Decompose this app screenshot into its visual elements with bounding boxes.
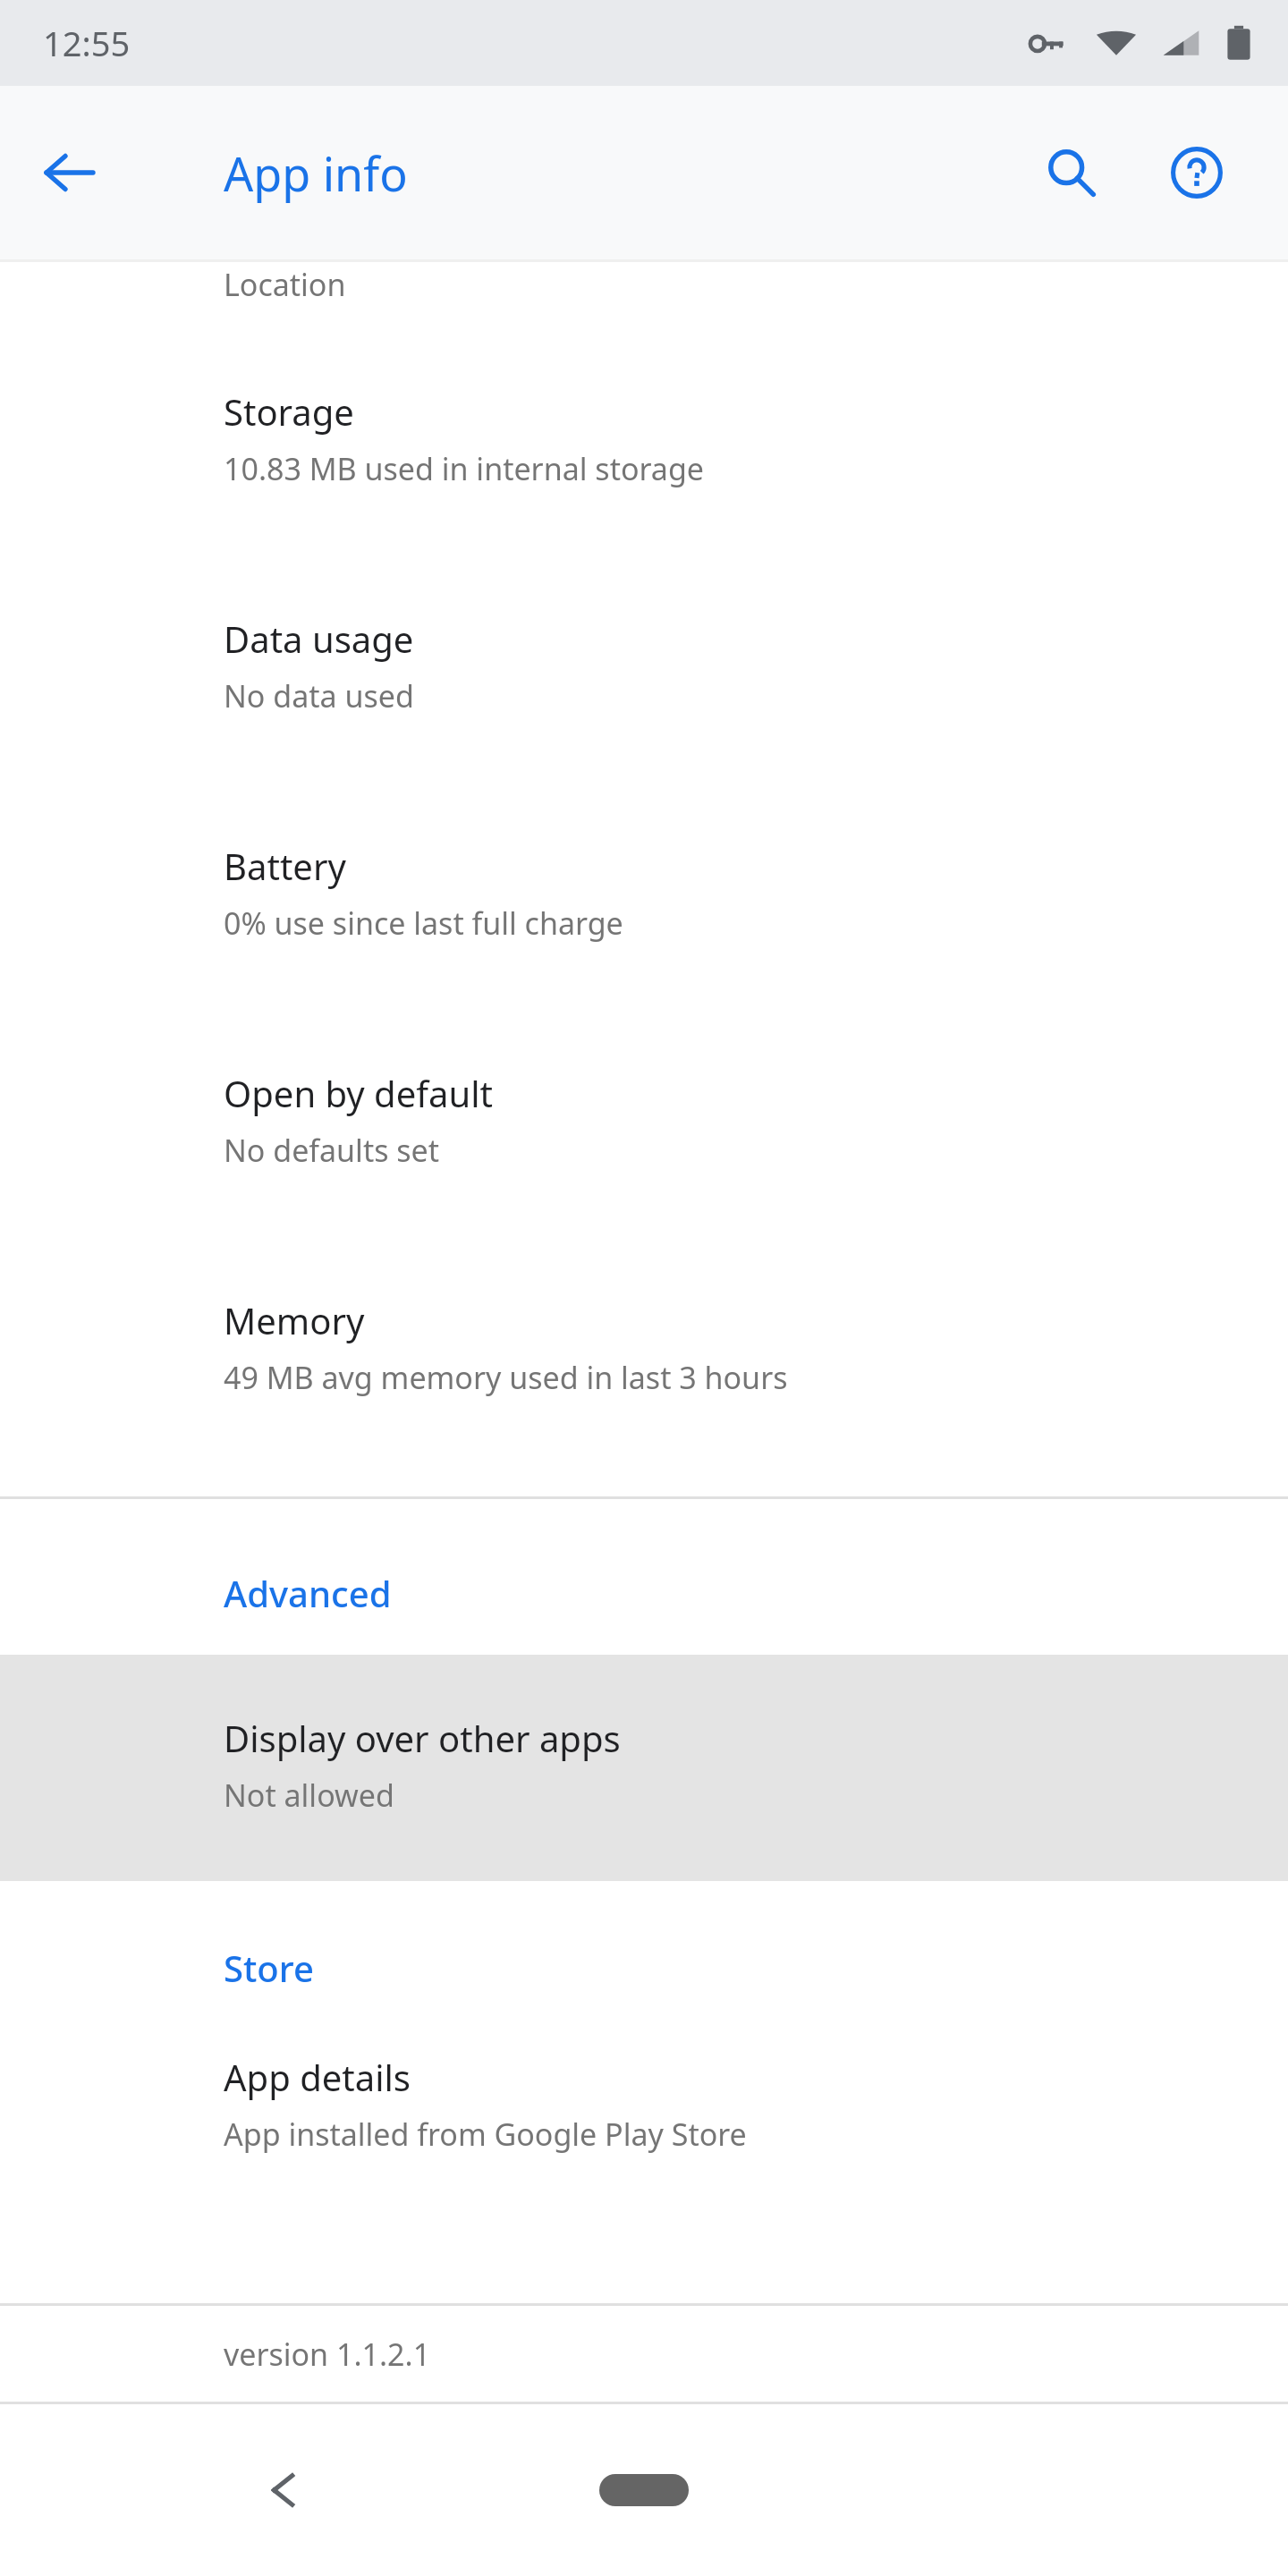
staticText: Advanced xyxy=(224,1569,392,1617)
button[interactable]: Search xyxy=(1027,128,1116,217)
staticText: No defaults set xyxy=(224,1130,440,1171)
button[interactable]: Data usage xyxy=(0,559,1288,786)
button[interactable]: Back xyxy=(27,130,113,216)
staticText: App installed from Google Play Store xyxy=(224,2114,747,2155)
button[interactable]: Storage xyxy=(0,332,1288,559)
staticText: 12:55 xyxy=(43,20,131,66)
staticText: Store xyxy=(224,1944,314,1992)
button[interactable]: Open by default xyxy=(0,1013,1288,1241)
staticText: Battery xyxy=(224,842,346,890)
button[interactable]: Help xyxy=(1152,128,1241,217)
button[interactable]: Battery xyxy=(0,786,1288,1013)
staticText: 0% use since last full charge xyxy=(224,902,623,944)
staticText: No data used xyxy=(224,675,414,716)
staticText: App details xyxy=(224,2053,411,2101)
button[interactable]: Location xyxy=(0,262,1288,332)
staticText: Open by default xyxy=(224,1069,493,1117)
staticText: Display over other apps xyxy=(224,1714,621,1762)
staticText: App info xyxy=(224,141,408,205)
staticText: Storage xyxy=(224,387,354,436)
staticText: version 1.1.2.1 xyxy=(224,2334,431,2375)
button[interactable]: Display over other apps xyxy=(0,1655,1288,1881)
staticText: Location xyxy=(224,264,346,305)
button[interactable]: Back xyxy=(234,2441,333,2539)
staticText: 49 MB avg memory used in last 3 hours xyxy=(224,1357,788,1398)
button[interactable]: Store xyxy=(0,1881,1288,2037)
button[interactable]: App details xyxy=(0,2037,1288,2264)
button[interactable]: Memory xyxy=(0,1241,1288,1468)
staticText: Not allowed xyxy=(224,1775,394,1816)
button[interactable]: Home xyxy=(572,2441,716,2539)
button[interactable]: Advanced xyxy=(0,1499,1288,1655)
staticText: Memory xyxy=(224,1296,365,1344)
staticText: Data usage xyxy=(224,614,414,663)
staticText: 10.83 MB used in internal storage xyxy=(224,448,704,489)
